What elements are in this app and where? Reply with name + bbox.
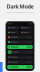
button[interactable]: Settings row	[7, 35, 33, 39]
button[interactable]: Selected option	[7, 65, 33, 69]
button[interactable]: Settings row	[7, 40, 33, 44]
button[interactable]: Accent option	[7, 50, 33, 54]
button[interactable]: Color option	[7, 31, 19, 34]
staticText: Dark Mode	[6, 3, 33, 10]
button[interactable]: Settings row	[7, 55, 33, 59]
button[interactable]: Color option	[20, 31, 33, 34]
button[interactable]: Color option	[7, 26, 19, 30]
button[interactable]: Selected option	[7, 45, 33, 49]
button[interactable]: Color option	[20, 26, 33, 30]
button[interactable]: Settings row	[7, 60, 33, 64]
